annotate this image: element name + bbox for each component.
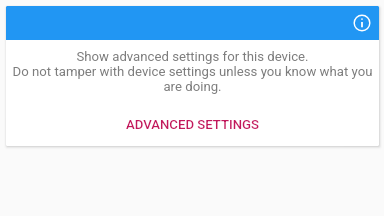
staticText: ADVANCED SETTINGS — [126, 117, 260, 132]
button[interactable]: Information — [349, 10, 375, 36]
staticText: Show advanced settings for this device. … — [10, 49, 375, 94]
button[interactable]: ADVANCED SETTINGS — [114, 108, 272, 141]
